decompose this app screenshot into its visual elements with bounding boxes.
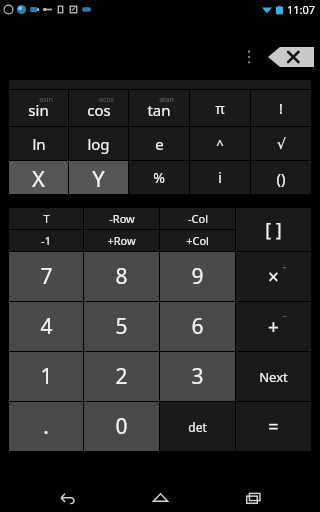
button[interactable]: ln xyxy=(9,127,68,160)
staticText: ÷ xyxy=(282,260,288,272)
staticText: 6 xyxy=(191,312,204,341)
button[interactable]: e xyxy=(129,127,189,160)
staticText: [ ] xyxy=(265,217,282,242)
staticText: +Row xyxy=(107,233,136,248)
staticText: tan xyxy=(147,100,171,120)
staticText: 5 xyxy=(115,312,128,341)
button[interactable]: 5 xyxy=(84,302,159,351)
staticText: +Col xyxy=(186,233,209,248)
button[interactable]: log xyxy=(69,127,128,160)
button[interactable]: Next xyxy=(236,352,311,401)
button[interactable]: Y xyxy=(69,161,128,194)
staticText: = xyxy=(268,414,279,439)
staticText: X xyxy=(32,163,45,193)
staticText: √ xyxy=(277,136,286,152)
staticText: ! xyxy=(279,99,283,118)
button[interactable]: -1 xyxy=(9,230,83,251)
staticText: det xyxy=(188,419,207,435)
staticText: 3 xyxy=(191,362,204,391)
button[interactable]: [ ] xyxy=(236,208,311,251)
staticText: () xyxy=(276,168,286,188)
staticText: ^ xyxy=(216,135,224,153)
button[interactable]: Home xyxy=(134,482,186,512)
button[interactable]: T xyxy=(9,208,83,229)
button[interactable]: X xyxy=(9,161,68,194)
staticText: -Col xyxy=(188,211,208,226)
staticText: sin xyxy=(28,100,49,120)
staticText: 0 xyxy=(115,412,128,441)
button[interactable]: () xyxy=(251,161,311,194)
staticText: Y xyxy=(92,163,105,193)
staticText: 7 xyxy=(40,262,53,291)
button[interactable]: 6 xyxy=(160,302,235,351)
button[interactable]: 2 xyxy=(84,352,159,401)
staticText: -1 xyxy=(41,233,51,248)
button[interactable]: 9 xyxy=(160,252,235,301)
staticText: × xyxy=(268,264,279,290)
staticText: 8 xyxy=(115,262,128,291)
button[interactable]: Recents xyxy=(227,482,279,512)
button[interactable]: asin xyxy=(9,90,68,126)
button[interactable]: More options xyxy=(238,44,260,70)
button[interactable]: + xyxy=(236,302,311,351)
button[interactable]: 3 xyxy=(160,352,235,401)
staticText: 2 xyxy=(115,362,128,391)
button[interactable]: ^ xyxy=(190,127,250,160)
button[interactable]: % xyxy=(129,161,189,194)
staticText: asin xyxy=(39,95,53,105)
staticText: acos xyxy=(99,95,114,105)
button[interactable]: π xyxy=(190,90,250,126)
button[interactable]: +Col xyxy=(160,230,235,251)
button[interactable]: 1 xyxy=(9,352,83,401)
button[interactable]: det xyxy=(160,402,235,451)
staticText: 4 xyxy=(40,312,53,341)
button[interactable]: i xyxy=(190,161,250,194)
button[interactable]: 7 xyxy=(9,252,83,301)
button[interactable]: √ xyxy=(251,127,311,160)
staticText: e xyxy=(155,134,164,154)
staticText: atan xyxy=(159,95,174,105)
button[interactable]: × xyxy=(236,252,311,301)
staticText: . xyxy=(43,412,49,441)
staticText: % xyxy=(153,168,165,187)
button[interactable]: +Row xyxy=(84,230,159,251)
staticText: i xyxy=(218,168,222,187)
button[interactable]: 4 xyxy=(9,302,83,351)
button[interactable]: 8 xyxy=(84,252,159,301)
staticText: + xyxy=(268,314,279,340)
staticText: 9 xyxy=(191,262,204,291)
button[interactable]: ! xyxy=(251,90,311,126)
staticText: Next xyxy=(259,368,288,386)
staticText: -Row xyxy=(109,211,135,226)
button[interactable]: Back xyxy=(41,482,93,512)
button[interactable]: 0 xyxy=(84,402,159,451)
button[interactable]: Delete xyxy=(268,47,314,67)
staticText: ln xyxy=(32,134,46,154)
button[interactable]: . xyxy=(9,402,83,451)
staticText: π xyxy=(215,99,225,118)
staticText: cos xyxy=(87,100,111,120)
staticText: 11:07 xyxy=(287,2,316,17)
button[interactable]: atan xyxy=(129,90,189,126)
button[interactable]: = xyxy=(236,402,311,451)
button[interactable]: -Col xyxy=(160,208,235,229)
staticText: − xyxy=(282,310,288,322)
staticText: T xyxy=(43,211,50,226)
button[interactable]: -Row xyxy=(84,208,159,229)
button[interactable]: acos xyxy=(69,90,128,126)
staticText: 1 xyxy=(40,362,53,391)
staticText: log xyxy=(87,134,110,154)
